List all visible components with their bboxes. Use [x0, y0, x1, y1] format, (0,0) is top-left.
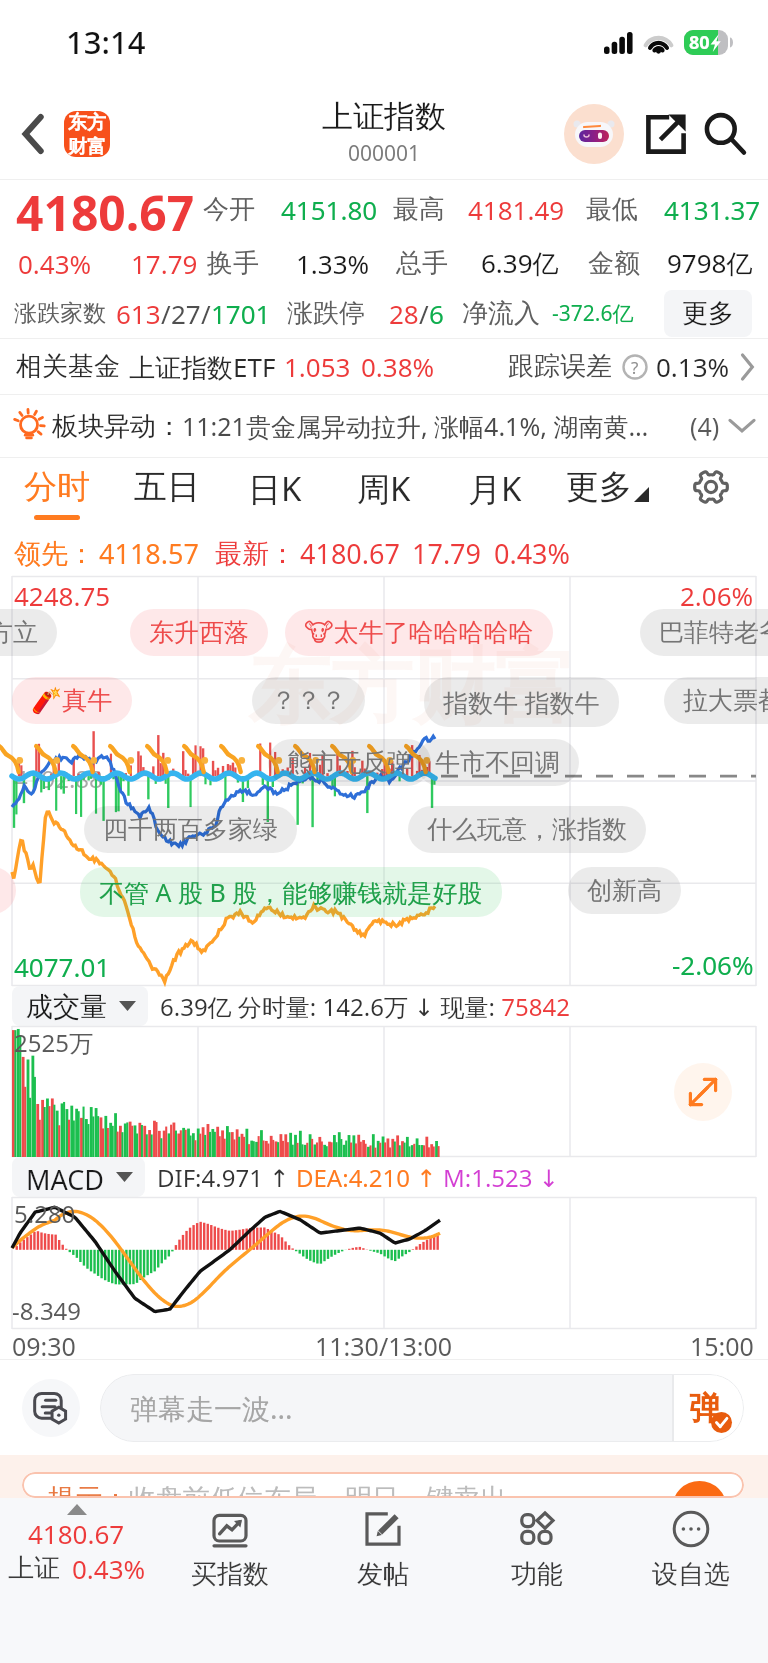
staticText: 1.33% — [296, 246, 370, 281]
button[interactable]: 弹幕走一波... — [100, 1374, 744, 1442]
staticText: 最低 — [586, 193, 638, 226]
staticText: 5.280 — [14, 1197, 76, 1230]
staticText: 2.06% — [680, 578, 754, 613]
staticText: 000001 — [348, 139, 421, 168]
staticText: M:1.523 ↓ — [443, 1161, 559, 1194]
button[interactable]: 五日 — [134, 466, 200, 508]
staticText: 领先： — [14, 537, 95, 571]
button[interactable]: 周K — [357, 466, 411, 511]
staticText: 6.39亿 分时量: 142.6万 ↓ 现量: — [160, 990, 495, 1023]
staticText: 27 — [171, 296, 201, 331]
staticText: 9798亿 — [667, 245, 753, 281]
staticText: 🧨真牛 — [31, 685, 113, 716]
staticText: 分时 — [24, 466, 90, 508]
staticText: 提示： — [48, 1482, 129, 1498]
staticText: / — [161, 296, 171, 331]
staticText: ? — [631, 356, 639, 379]
staticText: DEA:4.210 ↑ — [296, 1161, 443, 1194]
staticText: 6 — [429, 296, 444, 331]
button[interactable]: 分时 — [24, 466, 90, 520]
staticText: 收盘前低位布局，明日一键卖出 — [129, 1482, 507, 1498]
staticText: 4118.57 — [99, 535, 199, 572]
staticText: 0.43% — [18, 246, 92, 281]
staticText: 跟踪误差 — [508, 350, 612, 383]
staticText: 4077.01 — [14, 949, 111, 984]
button[interactable]: Settings — [686, 462, 736, 512]
staticText: -2.06% — [672, 947, 754, 982]
staticText: ？？？ — [271, 685, 346, 716]
button[interactable]: 日K — [248, 466, 302, 511]
staticText: 板块异动： — [52, 410, 182, 443]
staticText: 4181.49 — [468, 192, 565, 227]
button[interactable]: 设自选 — [614, 1498, 768, 1594]
staticText: 涨跌停 — [287, 297, 365, 330]
staticText: 上证指数 — [322, 97, 446, 136]
staticText: 总手 — [396, 247, 448, 280]
staticText: 东方 — [68, 111, 106, 135]
staticText: 🐮太牛了哈哈哈哈哈 — [304, 617, 534, 648]
staticText: 东方财富 — [248, 636, 576, 739]
staticText: 相关基金 — [16, 350, 120, 383]
button[interactable]: 买指数 — [153, 1498, 306, 1594]
staticText: / — [419, 296, 429, 331]
staticText: 最高 — [393, 193, 445, 226]
staticText: 金额 — [588, 247, 640, 280]
button[interactable]: Share — [638, 106, 694, 162]
staticText: 11:21贵金属异动拉升, 涨幅4.1%, 湖南黄… — [182, 409, 649, 443]
staticText: 13:14 — [66, 21, 146, 63]
staticText: 指数牛 指数牛 — [443, 685, 600, 719]
staticText: 4180.67 — [300, 535, 400, 572]
staticText: 0.43% — [494, 535, 571, 572]
staticText: 发帖 — [357, 1558, 409, 1591]
staticText: 巴菲特老爷 — [659, 617, 768, 648]
staticText: 今开 — [203, 193, 255, 226]
staticText: 创新高 — [587, 875, 662, 906]
button[interactable]: 4180.67 — [0, 1498, 153, 1594]
button[interactable]: Assistant — [564, 104, 624, 164]
button[interactable]: Back — [10, 111, 56, 157]
staticText: 4180.67 — [28, 1516, 125, 1551]
staticText: (4) — [690, 409, 720, 443]
staticText: 四千两百多家绿 — [103, 814, 278, 845]
staticText: 1701 — [211, 296, 271, 331]
staticText: -372.6亿 — [552, 299, 634, 328]
staticText: 4248.75 — [14, 578, 111, 613]
button[interactable]: MACD — [12, 1157, 145, 1197]
staticText: 0.43% — [72, 1551, 146, 1586]
staticText: 弹 — [689, 1388, 721, 1428]
staticText: 弹幕走一波... — [130, 1389, 293, 1427]
button[interactable]: 发帖 — [306, 1498, 460, 1594]
button[interactable]: 更多 — [664, 290, 752, 337]
button[interactable]: 相关基金 — [0, 339, 768, 394]
button[interactable]: 板块异动： — [0, 395, 768, 457]
staticText: DIF:4.971 ↑ — [157, 1161, 296, 1194]
staticText: 09:30 — [12, 1329, 76, 1359]
button[interactable]: 更多 — [566, 466, 649, 508]
staticText: 更多 — [682, 297, 734, 330]
button[interactable]: 功能 — [460, 1498, 614, 1594]
staticText: 买指数 — [191, 1558, 269, 1591]
staticText: 更多 — [566, 466, 632, 508]
staticText: 4180.67 — [16, 180, 195, 238]
staticText: 拉大票都 — [683, 685, 768, 716]
button[interactable]: East Money — [64, 111, 110, 157]
button[interactable]: Comments — [22, 1379, 80, 1437]
staticText: 613 — [116, 296, 161, 331]
button[interactable]: 月K — [468, 466, 522, 511]
staticText: 成交量 — [26, 990, 107, 1022]
staticText: 东方立 — [0, 617, 38, 648]
button[interactable]: 成交量 — [12, 986, 148, 1026]
staticText: 11:30/13:00 — [315, 1329, 453, 1359]
button[interactable]: Search — [696, 105, 754, 163]
staticText: 最新： — [215, 537, 296, 571]
staticText: 功能 — [511, 1558, 563, 1591]
staticText: 4131.37 — [664, 192, 761, 227]
button[interactable]: Fullscreen — [674, 1063, 732, 1121]
staticText: 0.13% — [656, 349, 730, 384]
staticText: 涨跌家数 — [14, 299, 106, 328]
staticText: 1.053 — [284, 349, 351, 384]
staticText: 75842 — [495, 990, 570, 1023]
staticText: MACD — [26, 1161, 104, 1193]
staticText: 4192.88 — [14, 762, 103, 795]
staticText: 上证 — [8, 1552, 60, 1585]
